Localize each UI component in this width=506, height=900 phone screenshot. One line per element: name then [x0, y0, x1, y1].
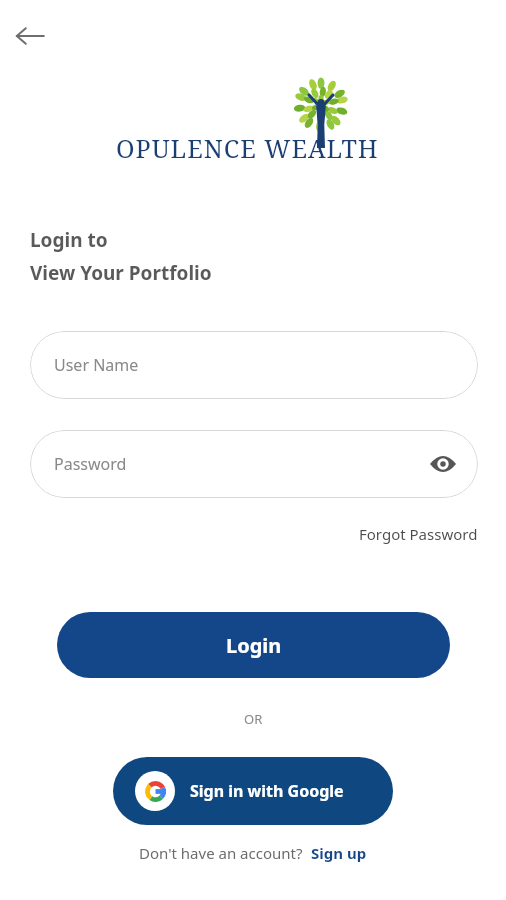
staticText: Sign up — [311, 843, 367, 863]
staticText: Sign in with Google — [190, 780, 344, 802]
button[interactable]: Forgot Password — [355, 520, 482, 548]
button[interactable]: Sign in with Google — [113, 757, 393, 825]
button[interactable]: Login — [57, 612, 450, 678]
staticText: User Name — [54, 354, 139, 376]
staticText: Forgot Password — [359, 524, 478, 544]
button[interactable]: User Name — [30, 331, 478, 399]
button[interactable]: Sign up — [311, 843, 367, 863]
staticText: Login to — [30, 227, 108, 253]
button[interactable]: Password — [30, 430, 478, 498]
staticText: View Your Portfolio — [30, 260, 212, 286]
staticText: Password — [54, 453, 127, 475]
staticText: OR — [244, 710, 263, 728]
staticText: Don't have an account? — [139, 843, 303, 863]
staticText: OPULENCE WEALTH — [116, 131, 379, 165]
button[interactable]: Back — [6, 12, 54, 60]
button[interactable]: Show password — [422, 443, 464, 485]
staticText: Login — [226, 632, 282, 659]
